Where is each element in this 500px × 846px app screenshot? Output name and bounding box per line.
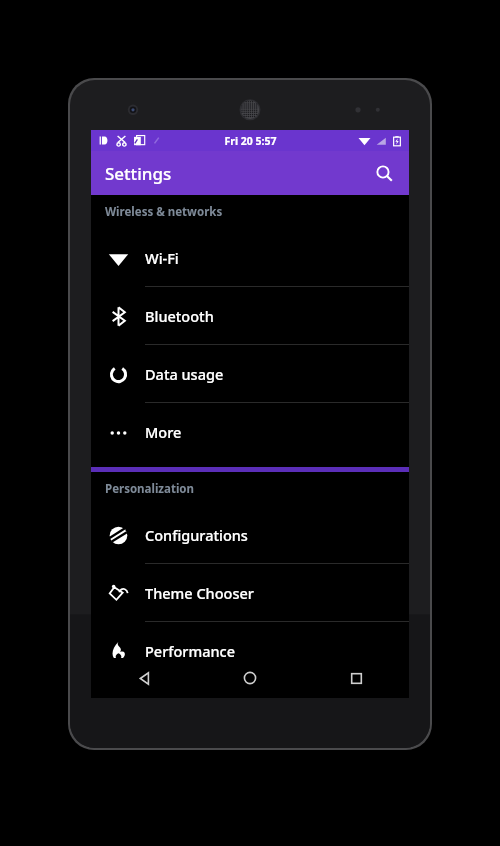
button[interactable]: Data usage [91, 345, 409, 403]
button[interactable]: Home [197, 658, 303, 698]
staticText: Bluetooth [145, 306, 214, 326]
staticText: Wireless & networks [105, 204, 223, 220]
button[interactable]: Wi-Fi [91, 229, 409, 287]
staticText: Wi-Fi [145, 248, 179, 268]
button[interactable]: Back [91, 658, 197, 698]
staticText: Configurations [145, 525, 248, 545]
button[interactable]: Search [367, 156, 401, 190]
button[interactable]: Performance [91, 622, 409, 680]
staticText: Performance [145, 641, 236, 661]
staticText: Fri 20 5:57 [224, 134, 277, 148]
staticText: More [145, 422, 182, 442]
button[interactable]: Configurations [91, 506, 409, 564]
staticText: Theme Chooser [145, 583, 254, 603]
staticText: Data usage [145, 364, 224, 384]
button[interactable]: Recent apps [303, 658, 409, 698]
staticText: Settings [105, 162, 172, 185]
staticText: Personalization [105, 481, 194, 497]
button[interactable]: More [91, 403, 409, 461]
button[interactable]: Bluetooth [91, 287, 409, 345]
button[interactable]: Theme Chooser [91, 564, 409, 622]
